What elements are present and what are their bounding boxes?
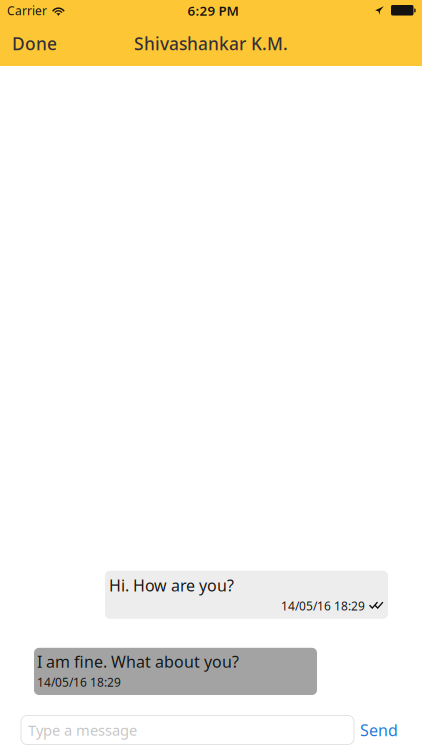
button[interactable]: Type a message [21,715,354,744]
staticText: Shivashankar K.M. [134,32,288,55]
button[interactable]: Done [0,21,69,66]
staticText: Type a message [28,720,137,740]
staticText: Hi. How are you? [109,575,234,596]
staticText: 14/05/16 18:29 [37,674,121,690]
staticText: Send [360,719,398,741]
staticText: Carrier [7,2,47,18]
button[interactable]: Send [354,714,412,746]
staticText: I am fine. What about you? [37,651,239,672]
staticText: 6:29 PM [187,2,238,19]
staticText: 14/05/16 18:29 [281,598,365,614]
staticText: Done [12,32,57,55]
